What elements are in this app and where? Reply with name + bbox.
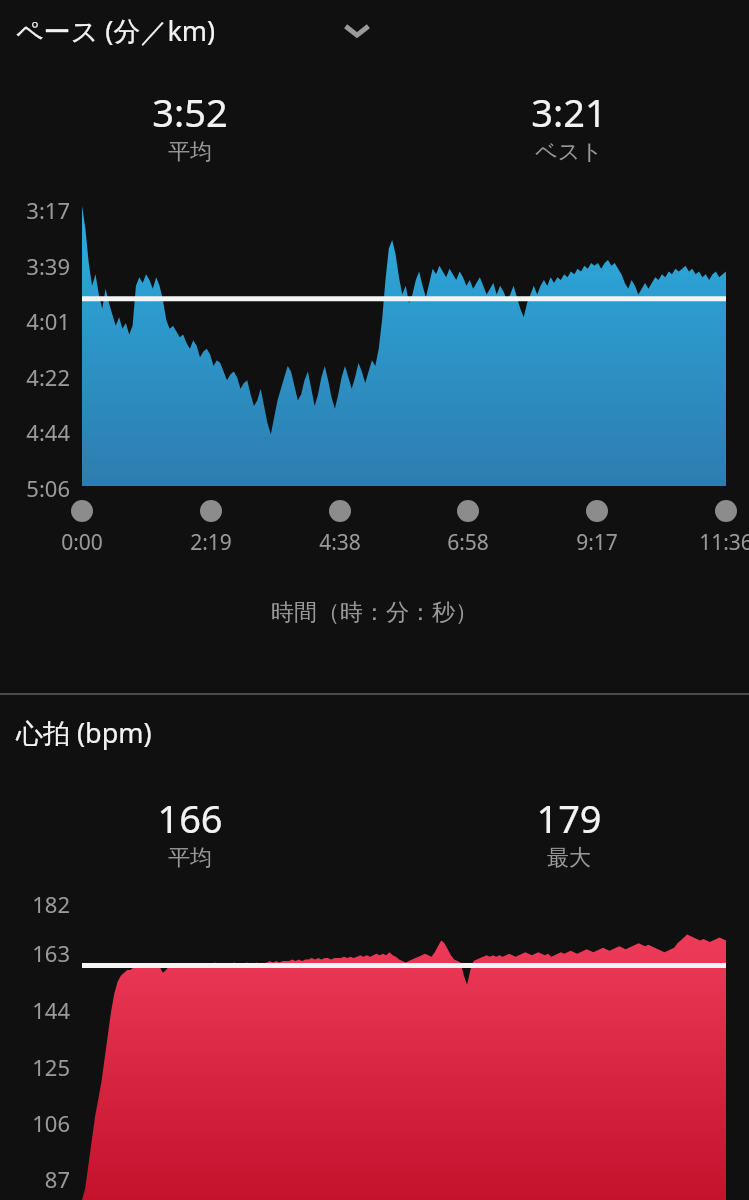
staticText: 0:00 [34,528,130,556]
staticText: 2:19 [163,528,259,556]
staticText: 3:39 [0,251,70,281]
staticText: 3:52 [80,86,300,138]
button[interactable]: 166 [80,792,300,884]
staticText: 平均 [80,138,300,166]
staticText: 3:21 [459,86,679,138]
staticText: 166 [80,792,300,844]
staticText: 6:58 [420,528,516,556]
staticText: 144 [0,995,70,1025]
staticText: 4:22 [0,362,70,392]
staticText: 9:17 [549,528,645,556]
staticText: 5:06 [0,473,70,503]
staticText: 163 [0,938,70,968]
staticText: 4:01 [0,306,70,336]
staticText: 最大 [459,844,679,872]
staticText: 時間（時：分：秒） [0,598,749,627]
staticText: 4:44 [0,417,70,447]
staticText: 87 [0,1164,70,1194]
staticText: 3:17 [0,195,70,225]
other: Expand [338,18,376,44]
staticText: 平均 [80,844,300,872]
staticText: 182 [0,889,70,919]
staticText: ペース (分／km) [16,12,216,49]
button[interactable]: 179 [459,792,679,884]
staticText: ベスト [459,138,679,166]
staticText: 179 [459,792,679,844]
staticText: 125 [0,1052,70,1082]
staticText: 4:38 [292,528,388,556]
button[interactable]: 3:21 [459,86,679,178]
button[interactable]: ペース (分／km) [0,0,749,62]
button[interactable]: 心拍 (bpm) [0,700,749,762]
button[interactable]: 3:52 [80,86,300,178]
staticText: 11:36 [678,528,749,556]
staticText: 106 [0,1108,70,1138]
staticText: 心拍 (bpm) [16,714,152,751]
